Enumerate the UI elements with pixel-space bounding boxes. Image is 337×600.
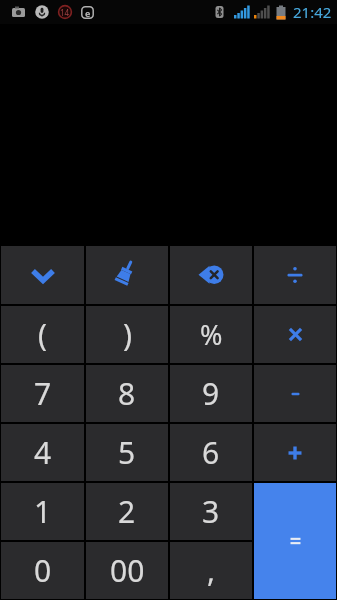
button[interactable]: 9	[170, 365, 252, 422]
button[interactable]: (	[1, 306, 84, 363]
staticText: 7	[34, 373, 52, 414]
button[interactable]: 8	[86, 365, 168, 422]
staticText: ,	[207, 550, 216, 591]
button[interactable]	[1, 246, 84, 304]
staticText: 6	[202, 432, 220, 473]
staticText: e	[85, 7, 91, 19]
button[interactable]: %	[170, 306, 252, 363]
staticText: 14	[60, 7, 70, 18]
staticText: 5	[118, 432, 136, 473]
button[interactable]: ,	[170, 542, 252, 599]
button[interactable]: )	[86, 306, 168, 363]
button[interactable]	[170, 246, 252, 304]
staticText: )	[123, 314, 132, 355]
button[interactable]: 2	[86, 483, 168, 540]
staticText: 00	[110, 550, 145, 591]
button[interactable]: 00	[86, 542, 168, 599]
button[interactable]: 6	[170, 424, 252, 481]
staticText: 21:42	[293, 2, 332, 22]
button[interactable]	[254, 365, 336, 422]
staticText: (	[38, 314, 47, 355]
button[interactable]	[254, 424, 336, 481]
button[interactable]	[254, 483, 336, 599]
button[interactable]: 0	[1, 542, 84, 599]
staticText: 9	[202, 373, 220, 414]
button[interactable]: 4	[1, 424, 84, 481]
staticText: %	[200, 316, 223, 353]
staticText: 1	[34, 491, 52, 532]
button[interactable]	[86, 246, 168, 304]
button[interactable]: 5	[86, 424, 168, 481]
button[interactable]: 7	[1, 365, 84, 422]
staticText: 2	[118, 491, 136, 532]
staticText: 3	[202, 491, 220, 532]
staticText: 8	[118, 373, 136, 414]
staticText: 0	[34, 550, 52, 591]
button[interactable]: 1	[1, 483, 84, 540]
button[interactable]	[254, 246, 336, 304]
button[interactable]	[254, 306, 336, 363]
button[interactable]: 3	[170, 483, 252, 540]
staticText: 4	[34, 432, 52, 473]
